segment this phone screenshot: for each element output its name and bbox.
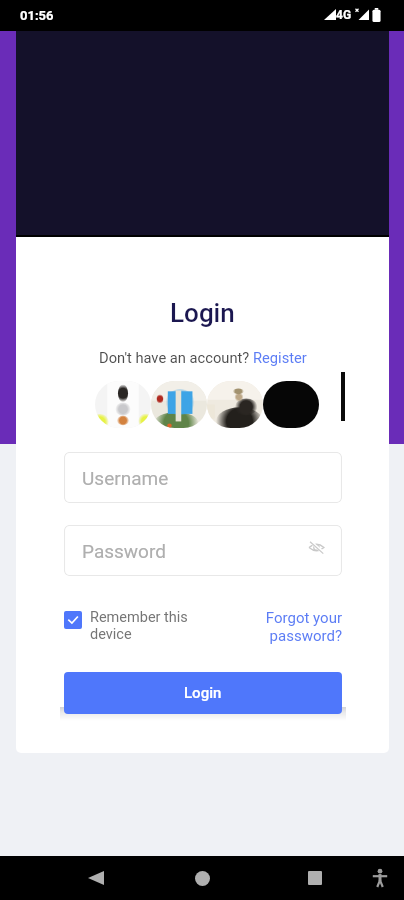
button[interactable]: Register — [253, 349, 307, 366]
button[interactable]: Remember this device — [64, 609, 214, 643]
button[interactable]: Username — [64, 452, 342, 503]
button[interactable]: Password — [64, 525, 342, 576]
button[interactable]: Recent apps — [289, 856, 341, 900]
staticText: Login — [184, 684, 222, 702]
button[interactable]: Login — [64, 672, 342, 714]
button[interactable]: Accessibility — [356, 856, 404, 900]
staticText: Password — [82, 540, 166, 562]
staticText: 4G — [336, 8, 352, 22]
staticText: Login — [170, 298, 235, 328]
button[interactable]: Home — [176, 856, 228, 900]
staticText: Don't have an account? — [99, 349, 253, 366]
button[interactable]: Forgot your password? — [262, 609, 342, 645]
staticText: 01:56 — [20, 8, 54, 23]
staticText: Username — [82, 467, 169, 489]
button[interactable]: Back — [70, 856, 122, 900]
staticText: Remember this device — [90, 609, 190, 643]
